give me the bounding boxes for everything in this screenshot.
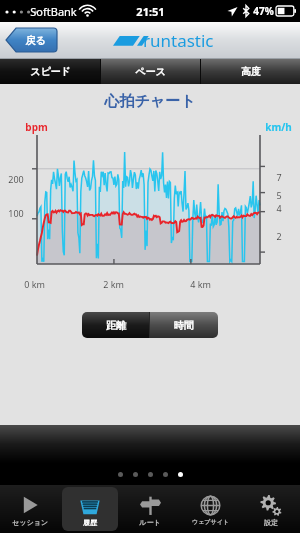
staticText: km/h	[265, 120, 292, 134]
button[interactable]: 高度	[201, 59, 300, 84]
staticText: runtastic	[143, 29, 214, 52]
staticText: SoftBank	[30, 4, 77, 19]
staticText: 200	[8, 173, 24, 185]
button[interactable]: 戻る	[5, 28, 57, 52]
staticText: 時間	[174, 319, 194, 332]
staticText: 100	[8, 207, 24, 219]
staticText: 距離	[106, 319, 126, 332]
staticText: 4 km	[190, 278, 211, 290]
staticText: 47%	[253, 4, 274, 18]
button[interactable]: スピード	[0, 59, 100, 84]
button[interactable]: 距離	[82, 312, 149, 338]
button[interactable]: 履歴	[60, 485, 120, 533]
staticText: 履歴	[83, 518, 97, 527]
button[interactable]: 時間	[150, 312, 218, 338]
button[interactable]: 設定	[240, 485, 300, 533]
staticText: 5	[276, 189, 282, 201]
staticText: 2	[276, 230, 282, 242]
staticText: 高度	[241, 65, 261, 78]
staticText: 2 km	[103, 278, 124, 290]
staticText: ウェブサイト	[192, 518, 229, 526]
staticText: 21:51	[136, 4, 165, 19]
button[interactable]: ルート	[120, 485, 180, 533]
staticText: ルート	[139, 518, 161, 527]
staticText: 0 km	[24, 278, 45, 290]
staticText: ペース	[135, 65, 166, 78]
staticText: 4	[276, 202, 282, 214]
staticText: スピード	[30, 65, 71, 78]
button[interactable]: ウェブサイト	[180, 485, 240, 533]
button[interactable]: セッション	[0, 485, 60, 533]
staticText: 戻る	[25, 34, 46, 47]
button[interactable]: ペース	[101, 59, 200, 84]
staticText: 設定	[264, 518, 278, 527]
staticText: 7	[276, 171, 282, 183]
staticText: bpm	[25, 120, 48, 134]
staticText: セッション	[12, 518, 48, 527]
staticText: 心拍チャート	[0, 92, 300, 111]
